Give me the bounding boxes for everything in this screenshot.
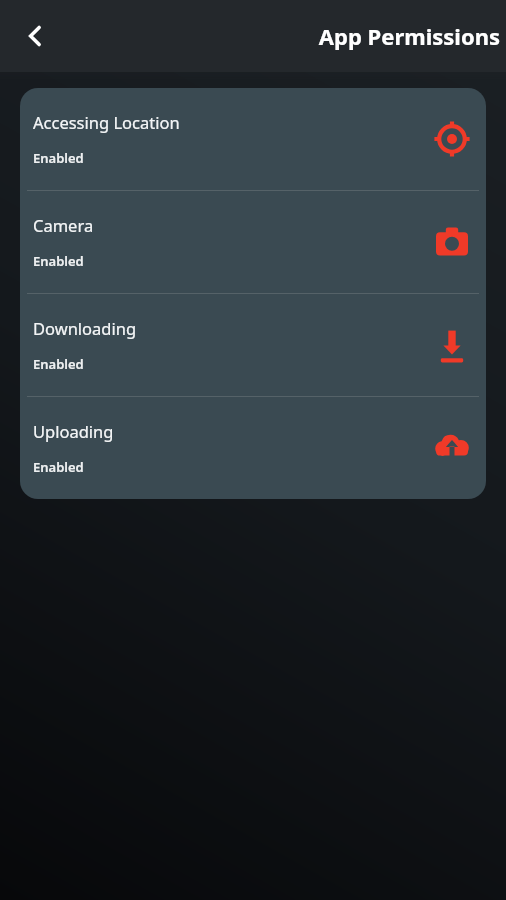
staticText: Enabled [33,252,84,270]
staticText: Camera [33,214,94,236]
staticText: Uploading [33,420,114,442]
button[interactable]: Downloading [20,294,486,396]
staticText: Enabled [33,355,84,373]
button[interactable]: Uploading [20,397,486,499]
staticText: Accessing Location [33,111,180,133]
staticText: Enabled [33,149,84,167]
staticText: Downloading [33,317,137,339]
staticText: App Permissions [318,21,500,51]
button[interactable]: Back [12,13,58,59]
button[interactable]: Accessing Location [20,88,486,190]
staticText: Enabled [33,458,84,476]
button[interactable]: Camera [20,191,486,293]
